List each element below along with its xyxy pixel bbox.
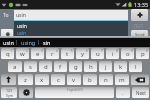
staticText: 4 [56, 49, 58, 53]
button[interactable]: x [35, 74, 49, 85]
staticText: f [59, 63, 62, 71]
button[interactable]: q [1, 48, 14, 59]
staticText: u [96, 50, 100, 58]
staticText: l [135, 63, 137, 71]
button[interactable]: Next [132, 87, 149, 98]
staticText: usin [17, 23, 27, 30]
staticText: . [122, 89, 124, 97]
button[interactable]: d [39, 61, 52, 72]
staticText: a [13, 63, 17, 71]
staticText: h [89, 63, 93, 71]
staticText: n [104, 76, 108, 84]
staticText: usin [17, 30, 26, 36]
button[interactable]: g [69, 61, 82, 72]
button[interactable]: b [83, 74, 97, 85]
staticText: sin [43, 39, 51, 46]
button[interactable]: o [121, 48, 134, 59]
button[interactable]: Attach [1, 29, 13, 38]
staticText: q [6, 50, 10, 58]
staticText: using [21, 39, 36, 46]
staticText: v [72, 76, 76, 84]
staticText: usin [16, 12, 26, 19]
staticText: Sym [6, 93, 13, 98]
button[interactable]: i [106, 48, 119, 59]
staticText: z [24, 76, 27, 84]
button[interactable]: z [18, 74, 33, 85]
staticText: 0 [146, 49, 148, 53]
button[interactable]: Settings [19, 87, 33, 98]
staticText: d [44, 63, 48, 71]
button[interactable]: j [99, 61, 112, 72]
button[interactable]: t [61, 48, 74, 59]
staticText: w [20, 50, 25, 58]
staticText: e [36, 50, 40, 58]
button[interactable]: y [76, 48, 89, 59]
staticText: g [74, 63, 78, 71]
button[interactable]: Send [131, 30, 148, 38]
button[interactable]: sin [39, 38, 55, 47]
staticText: To [3, 12, 9, 19]
button[interactable]: n [99, 74, 113, 85]
button[interactable]: s [24, 61, 37, 72]
staticText: 123 [6, 88, 13, 93]
button[interactable]: usin [14, 21, 128, 37]
staticText: Next [136, 90, 146, 96]
button[interactable]: Space [35, 87, 114, 98]
button[interactable]: e [31, 48, 44, 59]
button[interactable]: m [115, 74, 129, 85]
button[interactable]: h [84, 61, 97, 72]
staticText: 70/1 [133, 23, 144, 30]
button[interactable]: r [46, 48, 59, 59]
button[interactable]: l [129, 61, 142, 72]
staticText: English(US) [67, 88, 83, 92]
staticText: x [40, 76, 44, 84]
staticText: b [88, 76, 92, 84]
staticText: s [29, 63, 32, 71]
button[interactable]: v [67, 74, 81, 85]
button[interactable]: u [91, 48, 104, 59]
staticText: j [105, 63, 107, 71]
button[interactable]: . [116, 87, 130, 98]
button[interactable]: Backspace [131, 74, 149, 85]
staticText: 1 [11, 49, 13, 53]
button[interactable]: c [51, 74, 65, 85]
button[interactable]: a [8, 61, 22, 72]
button[interactable]: Shift [1, 74, 16, 85]
button[interactable]: p [136, 48, 149, 59]
button[interactable]: k [114, 61, 127, 72]
staticText: usin [3, 39, 14, 46]
staticText: 7 [101, 49, 103, 53]
staticText: m [119, 76, 125, 84]
button[interactable]: usin [14, 10, 128, 20]
staticText: y [81, 50, 85, 58]
staticText: c [57, 76, 60, 84]
staticText: p [141, 50, 145, 58]
staticText: 9 [131, 49, 133, 53]
button[interactable]: using [17, 38, 39, 47]
button[interactable]: Symbols [1, 87, 17, 98]
staticText: i [112, 50, 114, 58]
staticText: Send [135, 32, 145, 37]
button[interactable]: f [54, 61, 67, 72]
staticText: 3 [41, 49, 43, 53]
staticText: 13:35 [134, 1, 149, 8]
staticText: 8 [116, 49, 118, 53]
staticText: r [51, 50, 54, 58]
staticText: 6 [86, 49, 88, 53]
button[interactable]: usin [0, 38, 17, 47]
staticText: k [119, 63, 123, 71]
button[interactable]: Add recipient [131, 9, 148, 21]
staticText: t [66, 50, 69, 58]
staticText: 5 [71, 49, 73, 53]
staticText: o [126, 50, 130, 58]
staticText: 2 [26, 49, 28, 53]
button[interactable]: w [16, 48, 29, 59]
